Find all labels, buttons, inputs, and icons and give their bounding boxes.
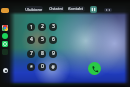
button[interactable]: WhatsApp	[2, 41, 8, 47]
staticText: 0	[41, 63, 44, 70]
staticText: 6	[52, 36, 55, 43]
button[interactable]: Call	[88, 62, 101, 75]
staticText: Ulubione	[25, 7, 43, 12]
staticText: 2	[41, 23, 44, 30]
staticText: Ostatnie	[49, 6, 64, 12]
staticText: *	[30, 64, 33, 71]
button[interactable]: More options	[104, 8, 112, 12]
staticText: JKL	[41, 43, 44, 44]
staticText: 3	[52, 23, 55, 30]
staticText: GHI	[29, 43, 33, 44]
button[interactable]: *	[27, 63, 35, 71]
staticText: DEF	[51, 30, 55, 31]
button[interactable]: Chrome	[2, 25, 8, 31]
staticText: TUV	[40, 57, 44, 58]
button[interactable]: 4	[27, 36, 35, 44]
button[interactable]: Spotify	[2, 33, 8, 39]
button[interactable]: 1	[27, 23, 35, 31]
staticText: 4	[30, 36, 33, 43]
staticText: 7	[30, 50, 33, 57]
button[interactable]: 8	[38, 50, 46, 58]
button[interactable]: Ulubione	[25, 6, 43, 12]
staticText: ABC	[40, 30, 44, 31]
button[interactable]: 5	[38, 36, 46, 44]
button[interactable]: Ostatnie	[49, 6, 64, 12]
staticText: 8	[41, 50, 44, 57]
staticText: WXYZ	[50, 57, 56, 58]
staticText: +	[42, 70, 44, 71]
staticText: 1	[30, 24, 33, 31]
staticText: MNO	[51, 43, 56, 44]
button[interactable]: 6	[49, 36, 57, 44]
button[interactable]: 7	[27, 50, 35, 58]
button[interactable]: 9	[49, 50, 57, 58]
button[interactable]: App	[2, 49, 8, 55]
staticText: 9	[52, 50, 55, 57]
button[interactable]: 2	[38, 23, 46, 31]
button[interactable]: Kontakty	[68, 6, 85, 12]
staticText: PQRS	[28, 57, 34, 58]
button[interactable]: 0	[38, 63, 46, 71]
staticText: #	[51, 64, 55, 71]
staticText: 5	[41, 36, 44, 43]
button[interactable]: Keypad	[90, 6, 97, 13]
staticText: Kontakty	[68, 6, 85, 12]
button[interactable]: Camera	[3, 68, 8, 73]
button[interactable]: 3	[49, 23, 57, 31]
button[interactable]: #	[49, 63, 57, 71]
